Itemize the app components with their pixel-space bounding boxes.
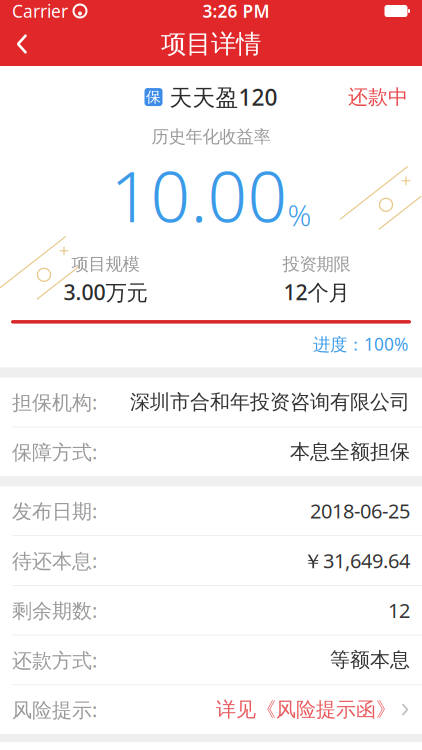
staticText: 还款方式: xyxy=(12,647,97,673)
staticText: 项目详情 xyxy=(161,28,261,59)
staticText: 还款中 xyxy=(348,85,408,109)
staticText: 详见《风险提示函》 xyxy=(216,697,396,722)
staticText: ￥31,649.64 xyxy=(303,547,410,574)
staticText: 10.00 xyxy=(110,149,287,241)
staticText: 2018-06-25 xyxy=(310,497,410,524)
staticText: 进度：100% xyxy=(313,333,408,356)
staticText: 等额本息 xyxy=(330,648,410,672)
staticText: 3.00万元 xyxy=(63,278,147,306)
button[interactable]: 风险提示: xyxy=(0,685,422,734)
staticText: 12 xyxy=(388,597,410,623)
staticText: 项目规模 xyxy=(71,253,139,275)
staticText: 天天盈120 xyxy=(169,82,277,112)
staticText: 剩余期数: xyxy=(12,597,97,623)
staticText: % xyxy=(287,195,311,234)
staticText: 12个月 xyxy=(283,278,349,306)
staticText: 保 xyxy=(146,88,161,106)
staticText: 3:26 PM xyxy=(202,0,269,22)
staticText: Carrier xyxy=(12,0,68,22)
staticText: 风险提示: xyxy=(12,696,97,723)
staticText: 本息全额担保 xyxy=(290,439,410,464)
staticText: 投资期限 xyxy=(282,253,350,275)
staticText: 发布日期: xyxy=(12,497,97,524)
staticText: 保障方式: xyxy=(12,438,97,465)
staticText: 历史年化收益率 xyxy=(151,126,270,147)
staticText: 待还本息: xyxy=(12,547,97,574)
staticText: 担保机构: xyxy=(12,389,97,415)
button[interactable]: 返回 xyxy=(0,22,44,66)
staticText: 深圳市合和年投资咨询有限公司 xyxy=(130,390,410,414)
